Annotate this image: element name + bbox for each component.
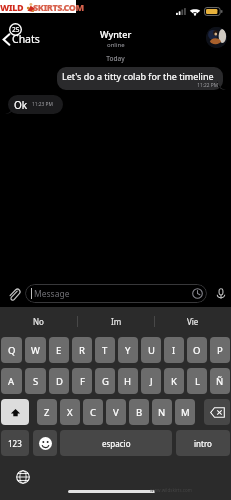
- staticText: O: [193, 344, 201, 357]
- staticText: 123: [8, 438, 22, 449]
- button[interactable]: D: [49, 368, 69, 394]
- button[interactable]: Emoji: [33, 430, 57, 456]
- button[interactable]: R: [72, 337, 92, 363]
- staticText: Ok: [14, 98, 28, 112]
- staticText: Message: [34, 288, 192, 300]
- button[interactable]: espacio: [60, 430, 172, 456]
- button[interactable]: Chats: [2, 32, 40, 46]
- button[interactable]: Voice message: [212, 285, 229, 302]
- button[interactable]: Shift: [1, 399, 29, 425]
- button[interactable]: N: [152, 399, 172, 425]
- staticText: 11:23 PM: [32, 101, 53, 108]
- staticText: J: [150, 375, 153, 388]
- button[interactable]: V: [106, 399, 126, 425]
- staticText: W: [31, 344, 40, 357]
- staticText: G: [102, 375, 109, 388]
- staticText: S: [33, 375, 39, 388]
- button[interactable]: J: [141, 368, 161, 394]
- button[interactable]: A: [1, 368, 22, 394]
- staticText: Y: [125, 344, 131, 357]
- button[interactable]: No: [0, 307, 77, 336]
- staticText: SKIRTS.COM: [33, 1, 84, 13]
- staticText: Let's do a titty colab for the timeline: [62, 70, 214, 82]
- button[interactable]: H: [118, 368, 138, 394]
- button[interactable]: G: [95, 368, 115, 394]
- staticText: Today: [0, 54, 231, 63]
- button[interactable]: Change language: [16, 470, 30, 484]
- button[interactable]: B: [129, 399, 149, 425]
- staticText: Chats: [12, 32, 40, 46]
- button[interactable]: intro: [176, 430, 230, 456]
- staticText: K: [171, 375, 177, 388]
- button[interactable]: F: [72, 368, 92, 394]
- button[interactable]: Profile photo: [206, 27, 227, 48]
- staticText: Wynter: [100, 28, 132, 40]
- staticText: V: [113, 406, 119, 419]
- staticText: M: [181, 406, 190, 419]
- button[interactable]: O: [187, 337, 207, 363]
- button[interactable]: Im: [78, 307, 154, 336]
- button[interactable]: K: [164, 368, 184, 394]
- button[interactable]: Q: [1, 337, 22, 363]
- staticText: WILD: [0, 1, 24, 13]
- button[interactable]: Vie: [155, 307, 231, 336]
- staticText: I: [172, 344, 176, 357]
- staticText: Ñ: [216, 375, 224, 388]
- staticText: 11:22 PM: [62, 82, 218, 89]
- button[interactable]: U: [141, 337, 161, 363]
- staticText: P: [217, 344, 223, 357]
- staticText: N: [158, 406, 166, 419]
- staticText: 25: [12, 25, 20, 34]
- staticText: www.wildskirts.com: [150, 487, 192, 493]
- button[interactable]: I: [164, 337, 184, 363]
- staticText: No: [33, 316, 44, 327]
- button[interactable]: T: [95, 337, 115, 363]
- staticText: Im: [111, 316, 122, 327]
- button[interactable]: C: [83, 399, 103, 425]
- staticText: D: [56, 375, 63, 388]
- button[interactable]: E: [49, 337, 69, 363]
- staticText: Vie: [187, 316, 199, 327]
- staticText: espacio: [102, 438, 131, 449]
- button[interactable]: Y: [118, 337, 138, 363]
- staticText: H: [124, 375, 132, 388]
- button[interactable]: 123: [1, 430, 29, 456]
- button[interactable]: Ok: [5, 95, 63, 114]
- button[interactable]: Attach: [5, 285, 22, 302]
- button[interactable]: L: [187, 368, 207, 394]
- button[interactable]: S: [25, 368, 46, 394]
- button[interactable]: Ñ: [210, 368, 230, 394]
- button[interactable]: W: [25, 337, 46, 363]
- button[interactable]: Message: [25, 284, 207, 303]
- staticText: intro: [194, 438, 212, 449]
- staticText: L: [195, 375, 200, 388]
- staticText: online: [107, 41, 125, 49]
- staticText: F: [80, 375, 85, 388]
- staticText: C: [90, 406, 97, 419]
- staticText: B: [136, 406, 143, 419]
- button[interactable]: X: [60, 399, 80, 425]
- staticText: U: [148, 344, 155, 357]
- button[interactable]: Z: [37, 399, 57, 425]
- button[interactable]: M: [175, 399, 195, 425]
- staticText: Z: [44, 406, 50, 419]
- staticText: X: [67, 406, 73, 419]
- staticText: E: [56, 344, 62, 357]
- staticText: T: [102, 344, 108, 357]
- button[interactable]: P: [210, 337, 230, 363]
- staticText: A: [8, 375, 15, 388]
- button[interactable]: Let's do a titty colab for the timeline: [57, 67, 226, 90]
- button[interactable]: Backspace: [204, 399, 230, 425]
- staticText: Q: [8, 344, 16, 357]
- staticText: R: [79, 344, 85, 357]
